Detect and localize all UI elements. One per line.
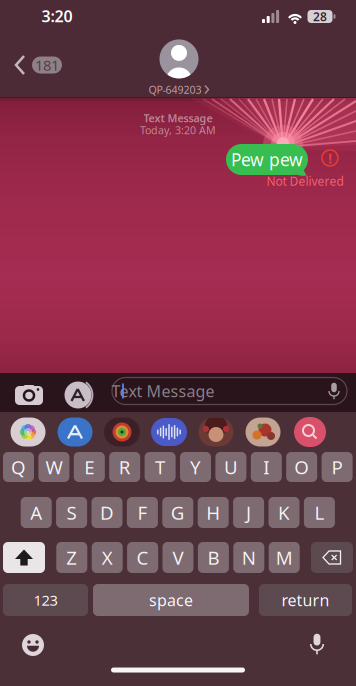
staticText: L [314, 500, 324, 525]
button[interactable]: Photos [10, 417, 45, 446]
button[interactable]: Sticker [104, 417, 140, 446]
button[interactable]: M [269, 542, 300, 573]
button[interactable]: Stickers [245, 417, 280, 446]
button[interactable]: V [162, 542, 193, 573]
staticText: U [224, 455, 238, 479]
button[interactable]: I [251, 452, 282, 482]
button[interactable]: Text Message [112, 377, 347, 404]
staticText: B [207, 545, 219, 570]
button[interactable]: N [233, 542, 264, 573]
staticText: return [281, 589, 329, 611]
button[interactable]: Z [56, 542, 87, 573]
staticText: 3:20 [41, 5, 72, 27]
button[interactable]: Apps [63, 380, 97, 410]
button[interactable]: 123 [3, 584, 88, 616]
staticText: A [30, 500, 42, 525]
staticText: QP-649203 [148, 82, 201, 97]
staticText: V [172, 545, 183, 570]
button[interactable]: D [91, 497, 122, 528]
staticText: O [294, 455, 309, 479]
button[interactable]: F [127, 497, 158, 528]
staticText: W [45, 455, 62, 479]
staticText: Text Message [111, 380, 214, 402]
staticText: Z [66, 545, 77, 570]
button[interactable]: C [127, 542, 158, 573]
button[interactable]: X [92, 542, 123, 573]
staticText: D [100, 500, 114, 525]
staticText: J [246, 500, 251, 525]
button[interactable]: E [74, 452, 105, 482]
staticText: T [155, 455, 165, 479]
staticText: F [137, 500, 147, 525]
staticText: K [278, 500, 290, 525]
button[interactable]: QP-649203 [134, 40, 224, 96]
button[interactable]: Pew pew [226, 144, 308, 175]
staticText: P [332, 455, 343, 479]
staticText: space [149, 589, 193, 611]
button[interactable]: Memoji Stickers [198, 417, 233, 446]
staticText: 28 [313, 8, 327, 24]
staticText: I [263, 455, 269, 479]
staticText: 123 [33, 590, 57, 610]
button[interactable]: Audio [151, 418, 187, 446]
staticText: Pew pew [231, 148, 303, 171]
staticText: Y [190, 455, 201, 479]
staticText: ! [328, 148, 332, 168]
button[interactable]: Delete [311, 542, 353, 573]
staticText: N [242, 545, 256, 570]
staticText: X [102, 545, 113, 570]
button[interactable]: L [304, 497, 335, 528]
button[interactable]: Back [12, 53, 64, 77]
staticText: H [206, 500, 220, 525]
button[interactable]: H [198, 497, 229, 528]
button[interactable]: B [198, 542, 229, 573]
button[interactable]: Not Delivered [320, 148, 340, 168]
button[interactable]: Y [180, 452, 211, 482]
button[interactable]: S [56, 497, 87, 528]
button[interactable]: K [268, 497, 299, 528]
button[interactable]: T [145, 452, 176, 482]
staticText: Text Message [143, 111, 212, 125]
button[interactable]: U [215, 452, 246, 482]
button[interactable]: Search [294, 417, 326, 447]
staticText: 181 [35, 55, 59, 75]
button[interactable]: A [21, 497, 52, 528]
button[interactable]: W [38, 452, 69, 482]
staticText: R [119, 455, 131, 479]
button[interactable]: J [233, 497, 264, 528]
button[interactable]: App Store [57, 417, 92, 446]
button[interactable]: Dictation [308, 631, 326, 656]
button[interactable]: P [322, 452, 353, 482]
button[interactable]: return [259, 584, 352, 616]
staticText: S [67, 500, 77, 525]
button[interactable]: space [93, 584, 249, 616]
button[interactable]: Shift [3, 542, 45, 573]
button[interactable]: G [162, 497, 193, 528]
staticText: E [84, 455, 94, 479]
staticText: G [171, 500, 185, 525]
button[interactable]: Q [3, 452, 34, 482]
staticText: M [276, 545, 293, 570]
staticText: Q [11, 455, 26, 479]
button[interactable]: Camera [13, 382, 45, 408]
button[interactable]: R [109, 452, 140, 482]
staticText: Not Delivered [266, 173, 343, 189]
button[interactable]: O [286, 452, 317, 482]
button[interactable]: Emoji [20, 632, 46, 658]
staticText: C [137, 545, 149, 570]
staticText: Today, 3:20 AM [140, 123, 216, 137]
